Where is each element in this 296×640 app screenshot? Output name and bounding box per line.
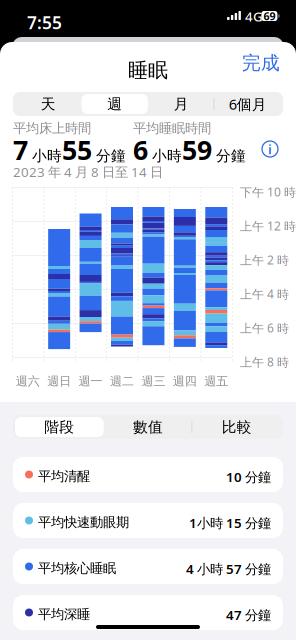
staticText: 上午 8 時	[240, 354, 289, 370]
button[interactable]: 週	[81, 92, 148, 116]
staticText: 4G	[245, 7, 263, 25]
staticText: 週三	[141, 374, 165, 389]
staticText: 天	[41, 95, 56, 113]
staticText: 59	[182, 132, 212, 167]
staticText: 1小時 15 分鐘	[189, 514, 271, 532]
staticText: 週四	[173, 374, 197, 389]
staticText: 10 分鐘	[226, 468, 271, 486]
staticText: 47 分鐘	[226, 606, 271, 624]
staticText: 下午 10 時	[240, 184, 296, 200]
staticText: 平均核心睡眠	[38, 560, 116, 576]
staticText: 睡眠	[128, 58, 168, 83]
staticText: 7	[13, 132, 28, 167]
button[interactable]: 6個月	[214, 92, 281, 116]
staticText: 分鐘	[92, 147, 126, 165]
staticText: 6個月	[229, 94, 267, 114]
staticText: 55	[62, 132, 92, 167]
staticText: 週五	[204, 374, 228, 389]
staticText: 小時	[28, 147, 62, 165]
staticText: 6	[133, 132, 148, 167]
staticText: 平均快速動眼期	[38, 514, 129, 530]
staticText: 7:55	[27, 11, 62, 34]
staticText: 週一	[79, 374, 103, 389]
button[interactable]: 平均深睡	[13, 595, 283, 630]
staticText: 階段	[44, 418, 74, 436]
staticText: 週	[107, 95, 122, 113]
button[interactable]: 完成	[239, 50, 283, 76]
button[interactable]: 關於這項數據	[259, 138, 281, 160]
staticText: 2023 年 4 月 8 日至 14 日	[13, 163, 163, 181]
staticText: 週日	[47, 374, 71, 389]
staticText: 小時	[148, 147, 182, 165]
staticText: 比較	[222, 418, 252, 436]
button[interactable]: 月	[148, 92, 214, 116]
staticText: 完成	[242, 51, 280, 74]
staticText: 平均深睡	[38, 606, 90, 622]
staticText: 週六	[16, 374, 40, 389]
staticText: 上午 6 時	[240, 320, 289, 336]
staticText: 分鐘	[212, 147, 246, 165]
staticText: 上午 4 時	[240, 286, 289, 302]
staticText: i	[268, 140, 272, 158]
staticText: 平均睡眠時間	[133, 120, 211, 136]
staticText: 週二	[110, 374, 134, 389]
staticText: 上午 12 時	[240, 218, 296, 234]
staticText: 平均清醒	[38, 468, 90, 484]
staticText: 上午 2 時	[240, 252, 289, 268]
staticText: 月	[174, 95, 189, 113]
button[interactable]: 階段	[15, 415, 104, 439]
staticText: 平均床上時間	[13, 120, 91, 136]
staticText: 數值	[133, 418, 163, 436]
button[interactable]: 比較	[192, 415, 281, 439]
button[interactable]: 平均快速動眼期	[13, 503, 283, 538]
button[interactable]: 平均核心睡眠	[13, 549, 283, 584]
staticText: 69	[263, 9, 275, 23]
button[interactable]: 數值	[104, 415, 192, 439]
button[interactable]: 天	[15, 92, 81, 116]
button[interactable]: 平均清醒	[13, 457, 283, 492]
staticText: 4 小時 57 分鐘	[186, 560, 271, 578]
